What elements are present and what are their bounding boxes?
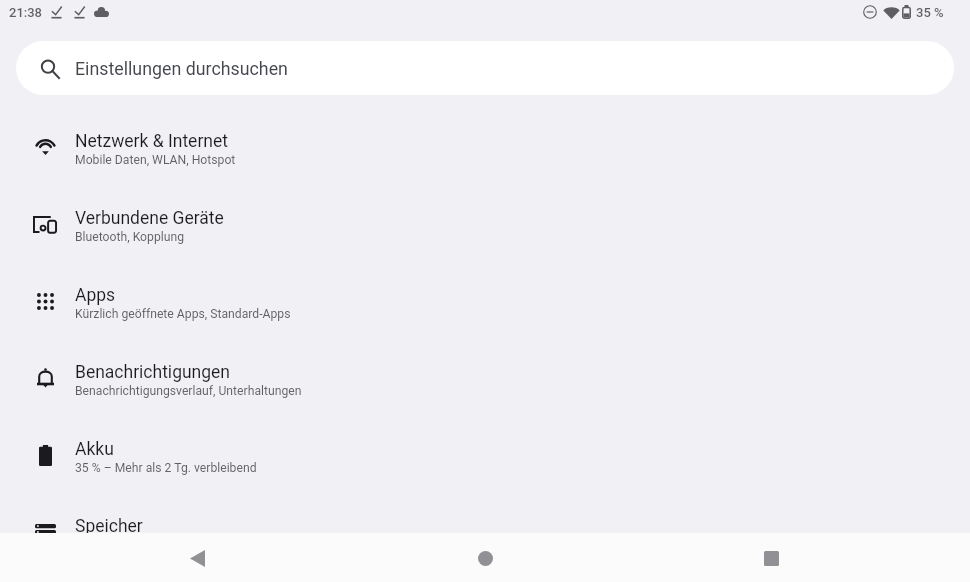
- staticText: 21:38: [9, 5, 43, 20]
- button[interactable]: Back: [177, 538, 217, 578]
- staticText: Apps: [75, 285, 116, 306]
- staticText: Bluetooth, Kopplung: [75, 230, 185, 244]
- staticText: Einstellungen durchsuchen: [75, 58, 288, 79]
- staticText: 35 %: [916, 5, 944, 20]
- button[interactable]: Apps: [0, 262, 970, 339]
- button[interactable]: Home: [465, 538, 505, 578]
- button[interactable]: Speicher: [0, 493, 970, 570]
- button[interactable]: Netzwerk & Internet: [0, 108, 970, 185]
- staticText: 10 % belegt – 231 GB frei: [75, 538, 212, 552]
- button[interactable]: Verbundene Geräte: [0, 185, 970, 262]
- staticText: Speicher: [75, 516, 143, 537]
- button[interactable]: Einstellungen durchsuchen: [16, 41, 954, 95]
- staticText: 35 % – Mehr als 2 Tg. verbleibend: [75, 461, 257, 475]
- staticText: Kürzlich geöffnete Apps, Standard-Apps: [75, 307, 291, 321]
- staticText: Benachrichtigungen: [75, 362, 231, 383]
- staticText: Akku: [75, 439, 114, 460]
- button[interactable]: Akku: [0, 416, 970, 493]
- button[interactable]: Benachrichtigungen: [0, 339, 970, 416]
- staticText: Mobile Daten, WLAN, Hotspot: [75, 153, 236, 167]
- button[interactable]: Recent apps: [751, 538, 791, 578]
- staticText: Verbundene Geräte: [75, 208, 224, 229]
- staticText: Netzwerk & Internet: [75, 131, 228, 152]
- staticText: Benachrichtigungsverlauf, Unterhaltungen: [75, 384, 302, 398]
